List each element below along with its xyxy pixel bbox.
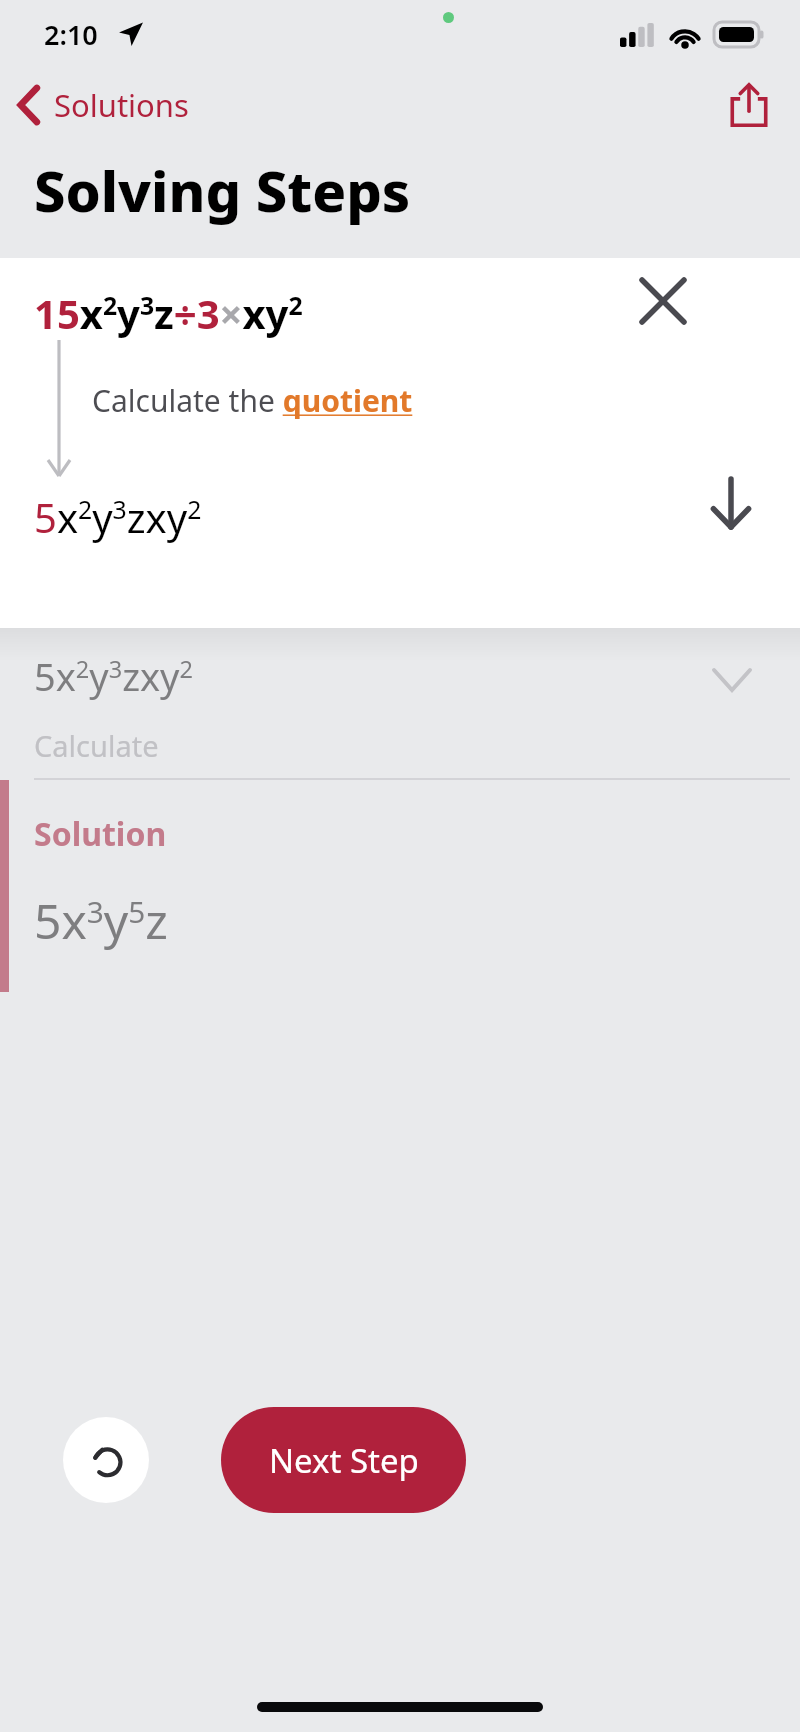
button[interactable]: Undo [63,1417,149,1503]
button[interactable]: 5x2y3zxy2 [0,628,800,778]
staticText: Calculate [34,726,159,765]
staticText: 15x2y3z÷3×xy2 [34,286,303,340]
button[interactable]: Solutions [0,76,205,134]
button[interactable]: Calculate the quotient [92,380,413,421]
staticText: Solving Steps [34,152,411,228]
button[interactable]: Share [722,78,776,132]
staticText: Calculate the quotient [92,380,413,421]
button[interactable]: Close [630,268,696,334]
staticText: 2:10 [44,16,98,53]
button[interactable]: Next Step [221,1407,466,1513]
staticText: Solution [34,812,167,856]
staticText: 5x3y5z [34,888,168,953]
staticText: 5x2y3zxy2 [34,650,193,702]
staticText: Solutions [54,84,189,126]
staticText: 5x2y3zxy2 [34,490,202,544]
staticText: Next Step [269,1438,419,1483]
button[interactable]: Next [698,470,764,536]
